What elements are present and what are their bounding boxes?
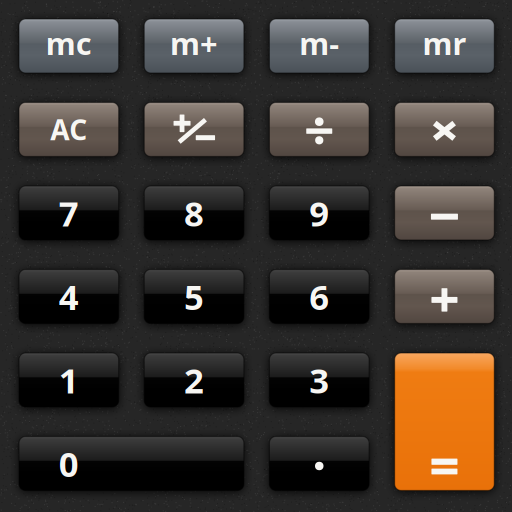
staticText: 4 xyxy=(59,273,79,319)
button[interactable]: 1 xyxy=(19,353,119,407)
staticText: m- xyxy=(299,23,339,63)
staticText: AC xyxy=(50,111,87,148)
button[interactable]: Multiply xyxy=(395,102,494,156)
staticText: 8 xyxy=(184,190,204,236)
button[interactable]: m+ xyxy=(144,19,244,73)
staticText: 0 xyxy=(59,440,79,486)
button[interactable]: m- xyxy=(269,19,369,73)
staticText: 5 xyxy=(184,273,204,319)
staticText: 7 xyxy=(59,190,79,236)
button[interactable]: AC xyxy=(19,102,119,156)
button[interactable]: 4 xyxy=(19,269,119,323)
button[interactable]: 2 xyxy=(144,353,244,407)
staticText: 3 xyxy=(309,357,329,403)
staticText: mc xyxy=(46,23,92,63)
button[interactable]: Divide xyxy=(269,102,369,156)
button[interactable]: Minus xyxy=(395,186,494,240)
button[interactable]: mc xyxy=(19,19,119,73)
staticText: m+ xyxy=(170,23,218,63)
button[interactable]: mr xyxy=(395,19,494,73)
button[interactable]: 3 xyxy=(269,353,369,407)
button[interactable]: 8 xyxy=(144,186,244,240)
staticText: 9 xyxy=(309,190,329,236)
staticText: 1 xyxy=(59,357,79,403)
button[interactable]: 5 xyxy=(144,269,244,323)
button[interactable]: 0 xyxy=(19,436,244,490)
button[interactable]: 7 xyxy=(19,186,119,240)
button[interactable]: Decimal point xyxy=(269,436,369,490)
button[interactable]: Plus xyxy=(395,269,494,323)
staticText: 2 xyxy=(184,357,204,403)
button[interactable]: 6 xyxy=(269,269,369,323)
button[interactable]: Plus minus xyxy=(144,102,244,156)
button[interactable]: 9 xyxy=(269,186,369,240)
button[interactable]: Equals xyxy=(395,353,494,490)
staticText: mr xyxy=(422,23,466,63)
staticText: 6 xyxy=(309,273,329,319)
